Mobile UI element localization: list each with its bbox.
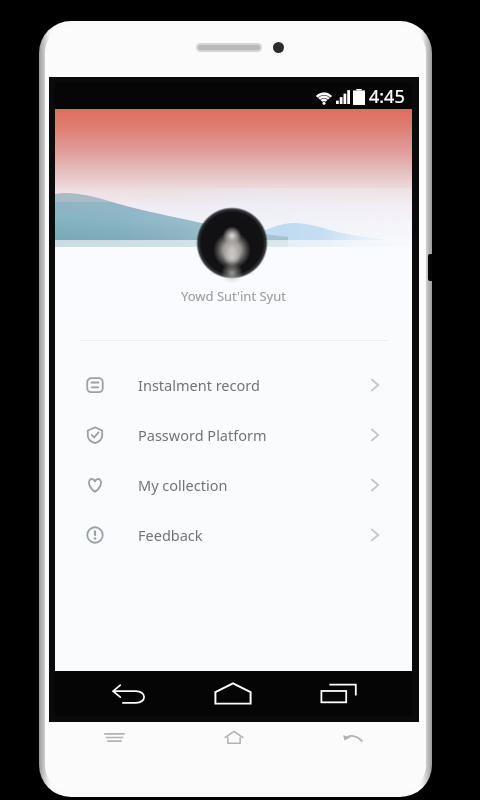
button[interactable]: Feedback [55,510,412,560]
staticText: 4:45 [369,84,405,109]
button[interactable]: Home [174,715,293,760]
button[interactable]: Menu [55,715,174,760]
button[interactable]: My collection [55,460,412,510]
staticText: Password Platform [138,425,267,445]
button[interactable]: Instalment record [55,360,412,410]
button[interactable]: Home [201,671,264,716]
staticText: Yowd Sut'int Syut [181,287,286,305]
staticText: Feedback [138,525,203,545]
staticText: Instalment record [138,375,260,395]
staticText: My collection [138,475,228,495]
button[interactable]: Back [98,671,161,716]
button[interactable]: Back [293,715,412,760]
button[interactable]: Recent apps [307,671,370,716]
button[interactable]: Password Platform [55,410,412,460]
